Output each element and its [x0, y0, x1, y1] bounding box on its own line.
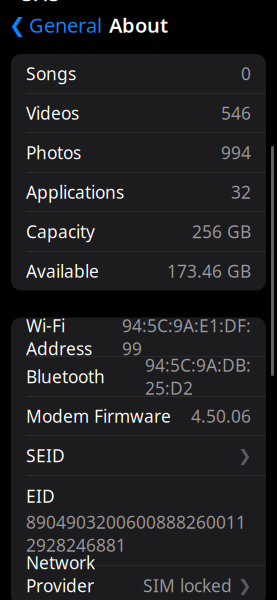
staticText: ❯ [238, 576, 251, 595]
staticText: 546 [221, 101, 251, 124]
button[interactable]: Network Provider Lock [11, 566, 266, 600]
staticText: Available [26, 259, 99, 282]
staticText: 89049032006008882600112928246881 [26, 510, 246, 556]
staticText: EID [26, 484, 55, 507]
staticText: Songs [26, 62, 76, 85]
staticText: Videos [26, 101, 79, 124]
staticText: Photos [26, 141, 81, 164]
button[interactable]: EID [11, 475, 266, 566]
staticText: 32 [231, 180, 251, 203]
staticText: Applications [26, 180, 124, 203]
staticText: About [109, 12, 168, 38]
staticText: SEID [26, 444, 65, 467]
staticText: 0 [241, 62, 251, 85]
button[interactable]: ❮ [0, 6, 102, 44]
staticText: 3:43 [22, 0, 60, 6]
staticText: Capacity [26, 220, 95, 243]
staticText: SIM locked [143, 574, 232, 597]
staticText: 173.46 GB [167, 259, 251, 282]
staticText: 94:5C:9A:E1:DF:99 [122, 314, 251, 360]
staticText: 994 [221, 141, 251, 164]
button[interactable]: SEID [11, 436, 266, 475]
staticText: ❯ [238, 446, 251, 465]
staticText: Bluetooth [26, 365, 105, 388]
staticText: Modem Firmware [26, 404, 171, 427]
staticText: ❮ [9, 14, 26, 36]
staticText: Wi-Fi Address [26, 314, 92, 360]
staticText: 94:5C:9A:DB:25:D2 [145, 353, 251, 399]
staticText: 256 GB [192, 220, 251, 243]
staticText: General [29, 12, 102, 38]
staticText: Network Provider Lock [26, 551, 95, 600]
staticText: 4.50.06 [191, 404, 251, 427]
